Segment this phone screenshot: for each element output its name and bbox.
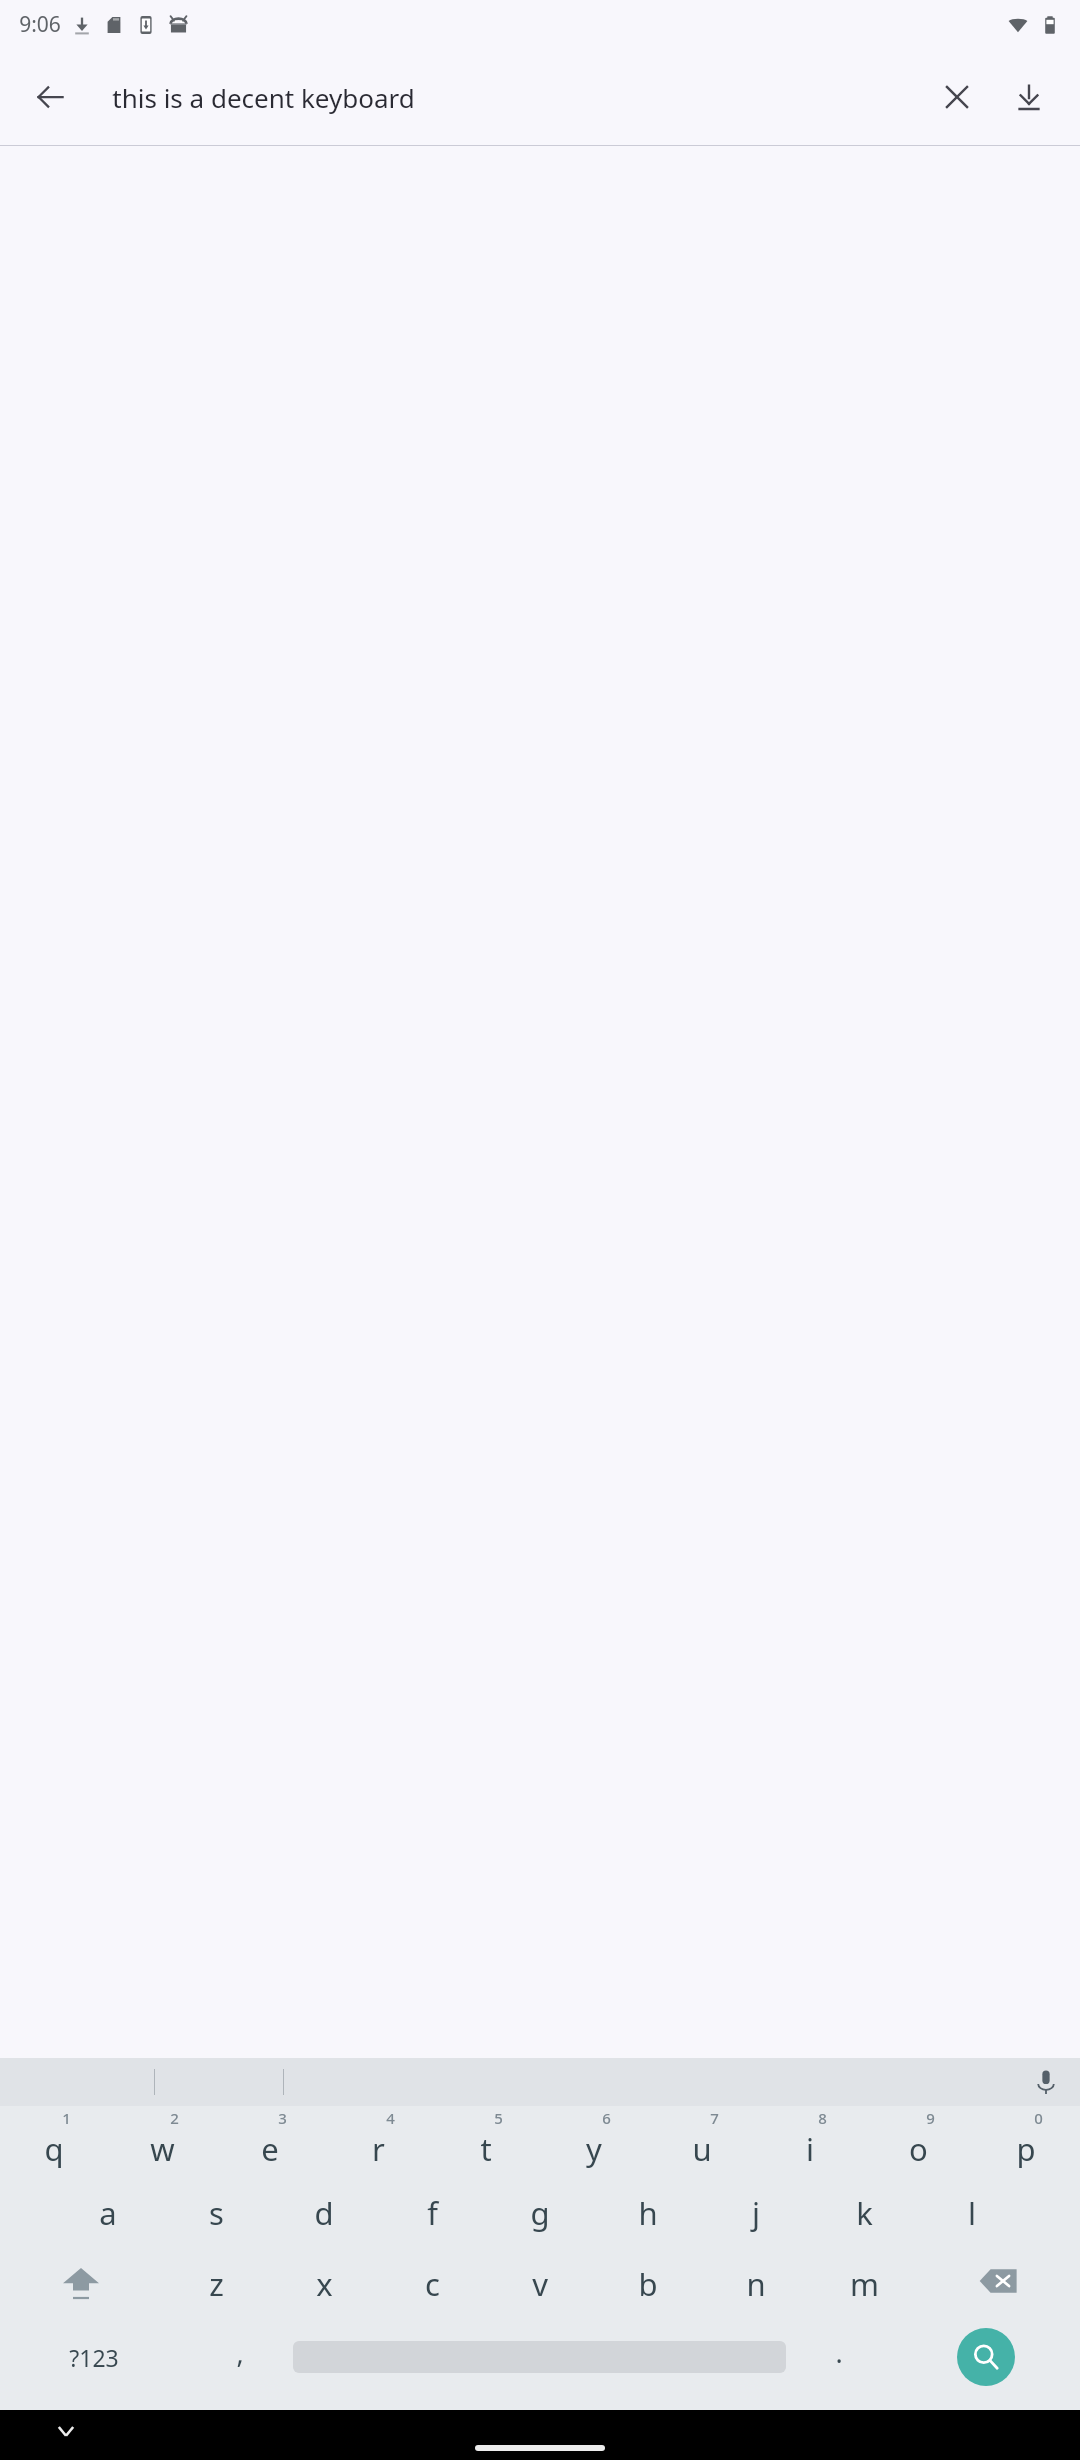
button[interactable]: 2 <box>108 2106 216 2178</box>
button[interactable]: 3 <box>216 2106 324 2178</box>
staticText: g <box>530 2192 550 2234</box>
button[interactable]: x <box>270 2248 378 2320</box>
staticText: p <box>1016 2128 1036 2170</box>
staticText: o <box>909 2128 928 2170</box>
button[interactable]: d <box>270 2178 378 2248</box>
button[interactable]: a <box>54 2178 162 2248</box>
button[interactable]: 9 <box>864 2106 972 2178</box>
button[interactable] <box>293 2320 786 2394</box>
staticText: 6 <box>602 2108 611 2128</box>
button[interactable]: b <box>594 2248 702 2320</box>
staticText: u <box>692 2128 712 2170</box>
staticText: l <box>968 2192 976 2234</box>
button[interactable]: g <box>486 2178 594 2248</box>
staticText: y <box>586 2128 602 2170</box>
button[interactable]: . <box>786 2320 892 2394</box>
button[interactable]: z <box>162 2248 270 2320</box>
staticText: t <box>480 2128 492 2170</box>
staticText: 4 <box>386 2108 395 2128</box>
button[interactable]: 4 <box>324 2106 432 2178</box>
button[interactable]: this is a decent keyboard <box>112 61 800 133</box>
staticText: 8 <box>818 2108 827 2128</box>
button[interactable]: Back <box>26 73 74 121</box>
button[interactable]: f <box>378 2178 486 2248</box>
button[interactable]: s <box>162 2178 270 2248</box>
staticText: s <box>209 2192 224 2234</box>
button[interactable]: 5 <box>432 2106 540 2178</box>
staticText: 2 <box>170 2108 179 2128</box>
button[interactable]: Backspace <box>918 2248 1080 2320</box>
button[interactable]: Clear <box>926 66 988 128</box>
staticText: d <box>314 2192 334 2234</box>
button[interactable]: v <box>486 2248 594 2320</box>
button[interactable]: 7 <box>648 2106 756 2178</box>
staticText: i <box>806 2128 814 2170</box>
button[interactable]: h <box>594 2178 702 2248</box>
button[interactable]: Hide keyboard <box>46 2411 86 2451</box>
staticText: 9:06 <box>19 10 61 39</box>
button[interactable]: 0 <box>972 2106 1080 2178</box>
button[interactable]: , <box>187 2320 293 2394</box>
button[interactable]: Search <box>892 2320 1080 2394</box>
staticText: 3 <box>278 2108 287 2128</box>
button[interactable]: l <box>918 2178 1026 2248</box>
staticText: c <box>425 2263 440 2305</box>
staticText: q <box>44 2128 64 2170</box>
staticText: j <box>752 2192 760 2234</box>
button[interactable]: Home <box>475 2445 605 2451</box>
staticText: ?123 <box>69 2342 119 2373</box>
button[interactable]: Shift <box>0 2248 162 2320</box>
button[interactable]: ?123 <box>0 2320 187 2394</box>
staticText: 9 <box>926 2108 935 2128</box>
staticText: z <box>209 2263 224 2305</box>
staticText: 7 <box>710 2108 719 2128</box>
button[interactable]: 6 <box>540 2106 648 2178</box>
staticText: b <box>638 2263 658 2305</box>
button[interactable]: Voice input <box>1024 2060 1068 2104</box>
staticText: a <box>99 2192 117 2234</box>
staticText: , <box>236 2334 244 2371</box>
staticText: h <box>638 2192 658 2234</box>
staticText: 1 <box>62 2108 71 2128</box>
staticText: n <box>746 2263 766 2305</box>
button[interactable]: n <box>702 2248 810 2320</box>
button[interactable]: j <box>702 2178 810 2248</box>
button[interactable]: 1 <box>0 2106 108 2178</box>
staticText: r <box>372 2128 385 2170</box>
staticText: 5 <box>494 2108 503 2128</box>
button[interactable]: 8 <box>756 2106 864 2178</box>
staticText: w <box>150 2128 175 2170</box>
staticText: m <box>850 2263 879 2305</box>
button[interactable]: m <box>810 2248 918 2320</box>
staticText: e <box>261 2128 279 2170</box>
staticText: 0 <box>1034 2108 1043 2128</box>
staticText: f <box>427 2192 438 2234</box>
staticText: . <box>835 2334 843 2371</box>
button[interactable]: k <box>810 2178 918 2248</box>
button[interactable]: Download <box>998 66 1060 128</box>
staticText: x <box>316 2263 333 2305</box>
staticText: k <box>856 2192 873 2234</box>
staticText: this is a decent keyboard <box>112 80 415 115</box>
button[interactable]: c <box>378 2248 486 2320</box>
staticText: v <box>532 2263 548 2305</box>
